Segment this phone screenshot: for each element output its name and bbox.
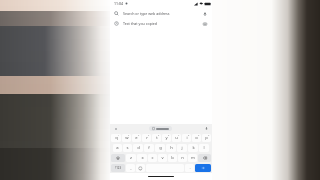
staticText: h	[170, 145, 173, 151]
staticText: .	[189, 165, 191, 171]
button[interactable]: y	[162, 134, 171, 142]
button[interactable]: ?123	[111, 164, 125, 172]
staticText: 9	[198, 134, 200, 137]
staticText: 4	[148, 134, 150, 137]
staticText: a	[116, 145, 119, 151]
staticText: b	[171, 155, 174, 161]
staticText: z	[130, 155, 132, 161]
staticText: v	[161, 155, 164, 161]
button[interactable]: o	[192, 134, 201, 142]
button[interactable]: ,	[126, 164, 135, 172]
staticText: g	[159, 145, 162, 151]
staticText: 6	[168, 134, 170, 137]
button[interactable]: n	[178, 154, 187, 162]
staticText: s	[126, 145, 129, 151]
button[interactable]: c	[148, 154, 157, 162]
staticText: 3	[138, 134, 140, 137]
button[interactable]: ☺	[136, 164, 145, 172]
staticText: 0	[208, 134, 210, 137]
button[interactable]: f	[144, 144, 154, 152]
button[interactable]: a	[113, 144, 122, 152]
staticText: d	[137, 145, 140, 151]
button[interactable]: g	[155, 144, 165, 152]
button[interactable]: Toggle toolbar	[113, 126, 118, 131]
staticText: w	[125, 135, 129, 141]
button[interactable]: Voice input	[204, 126, 209, 131]
button[interactable]: j	[177, 144, 187, 152]
button[interactable]: e	[132, 134, 141, 142]
button[interactable]: r	[142, 134, 151, 142]
button[interactable]: Text that you copied	[110, 18, 212, 28]
button[interactable]: Search	[195, 164, 211, 172]
button[interactable]: k	[188, 144, 198, 152]
button[interactable]: x	[137, 154, 147, 162]
button[interactable]: Backspace	[198, 154, 211, 162]
staticText: r	[146, 135, 148, 141]
staticText: Search or type web address	[123, 11, 170, 16]
button[interactable]: Shift	[111, 154, 125, 162]
staticText: ,	[130, 165, 132, 171]
staticText: i	[186, 135, 188, 141]
button[interactable]: s	[123, 144, 132, 152]
button[interactable]: i	[182, 134, 191, 142]
button[interactable]: v	[158, 154, 167, 162]
staticText: Text that you copied	[123, 21, 158, 26]
staticText: t	[156, 135, 158, 141]
staticText: 8	[188, 134, 190, 137]
button[interactable]	[149, 126, 172, 131]
staticText: o	[195, 135, 198, 141]
button[interactable]: q	[111, 134, 121, 142]
staticText: u	[175, 135, 178, 141]
staticText: p	[205, 135, 208, 141]
staticText: n	[181, 155, 184, 161]
staticText: c	[151, 155, 154, 161]
staticText: 11:04	[114, 1, 123, 6]
staticText: 1	[118, 134, 120, 137]
button[interactable]: d	[133, 144, 143, 152]
staticText: x	[141, 155, 144, 161]
staticText: ☺	[138, 166, 143, 171]
button[interactable]: h	[166, 144, 176, 152]
staticText: ?123	[115, 166, 122, 170]
button[interactable]: z	[126, 154, 136, 162]
staticText: 5	[158, 134, 160, 137]
button[interactable]: Lens search	[201, 20, 208, 27]
staticText: y	[165, 135, 168, 141]
staticText: j	[181, 145, 183, 151]
staticText: 2	[128, 134, 130, 137]
button[interactable]: m	[188, 154, 197, 162]
staticText: m	[191, 155, 195, 161]
staticText: l	[203, 145, 205, 151]
button[interactable]: w	[122, 134, 131, 142]
staticText: q	[115, 135, 118, 141]
button[interactable]: b	[168, 154, 177, 162]
staticText: 7	[178, 134, 180, 137]
button[interactable]: t	[152, 134, 161, 142]
staticText: k	[192, 145, 195, 151]
button[interactable]: Voice search	[201, 10, 208, 17]
staticText: e	[135, 135, 138, 141]
button[interactable]: Search or type web address	[110, 8, 212, 18]
button[interactable]: u	[172, 134, 181, 142]
button[interactable]: p	[202, 134, 211, 142]
staticText: f	[148, 145, 150, 151]
button[interactable]: l	[199, 144, 209, 152]
